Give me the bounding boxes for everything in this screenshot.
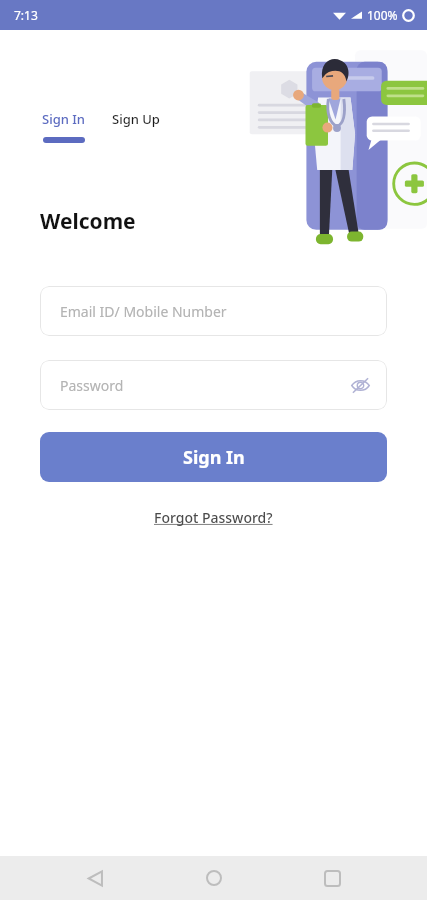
staticText: Sign Up: [112, 110, 160, 128]
button[interactable]: Forgot Password?: [146, 504, 281, 531]
button[interactable]: Password: [40, 360, 387, 410]
staticText: 100%: [367, 7, 398, 23]
button[interactable]: Sign Up: [110, 108, 162, 130]
staticText: Welcome: [40, 207, 136, 236]
button[interactable]: Email ID/ Mobile Number: [40, 286, 387, 336]
staticText: 7:13: [14, 7, 38, 23]
staticText: Sign In: [42, 110, 86, 128]
button[interactable]: Back: [72, 856, 118, 900]
button[interactable]: Sign In: [40, 432, 387, 482]
button[interactable]: Recent apps: [309, 856, 355, 900]
button[interactable]: Home: [191, 856, 237, 900]
staticText: Password: [60, 376, 124, 395]
staticText: Sign In: [183, 445, 245, 470]
button[interactable]: Show password: [347, 372, 373, 398]
staticText: Email ID/ Mobile Number: [60, 302, 227, 321]
staticText: Forgot Password?: [154, 508, 273, 527]
button[interactable]: Sign In: [40, 108, 88, 145]
